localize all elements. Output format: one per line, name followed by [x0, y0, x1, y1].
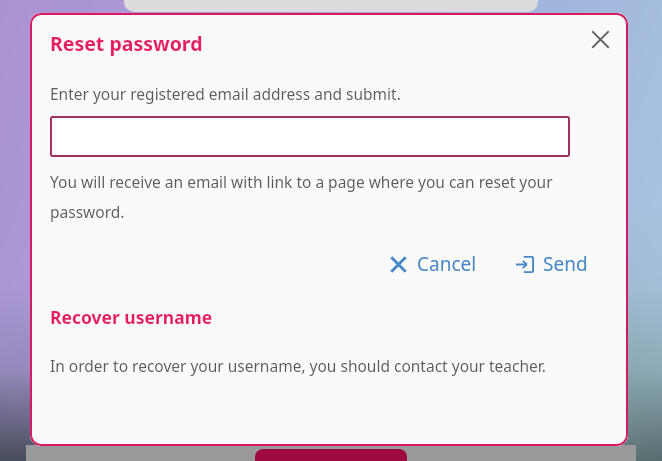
staticText: Enter your registered email address and … [50, 83, 401, 104]
staticText: Reset password [50, 30, 203, 57]
staticText: Recover username [50, 305, 213, 329]
button[interactable]: Close [578, 17, 622, 61]
button[interactable]: Cancel [385, 245, 481, 283]
staticText: You will receive an email with link to a… [50, 171, 581, 223]
button[interactable]: Email address field [50, 116, 570, 157]
staticText: In order to recover your username, you s… [50, 355, 550, 376]
button[interactable]: Send [511, 245, 592, 283]
staticText: Send [543, 251, 588, 277]
staticText: Cancel [417, 251, 477, 277]
